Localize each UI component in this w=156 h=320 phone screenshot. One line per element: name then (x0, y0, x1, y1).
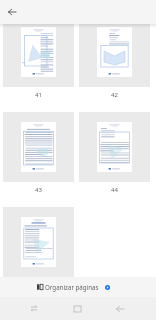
staticText: 44 (79, 186, 150, 194)
button[interactable]: More options (105, 285, 110, 290)
button[interactable] (3, 207, 74, 277)
button[interactable]: Back (108, 297, 132, 320)
staticText: Organizar páginas (45, 283, 99, 291)
staticText: 42 (79, 91, 150, 99)
button[interactable]: Organizar páginas (34, 277, 102, 297)
button[interactable]: Back (4, 4, 19, 19)
staticText: 45 (3, 281, 74, 289)
button[interactable] (79, 112, 150, 182)
button[interactable] (3, 112, 74, 182)
button[interactable]: Recent apps (22, 297, 46, 320)
button[interactable] (79, 17, 150, 87)
button[interactable] (3, 17, 74, 87)
button[interactable]: Home (65, 297, 89, 320)
staticText: 43 (3, 186, 74, 194)
staticText: 41 (3, 91, 74, 99)
